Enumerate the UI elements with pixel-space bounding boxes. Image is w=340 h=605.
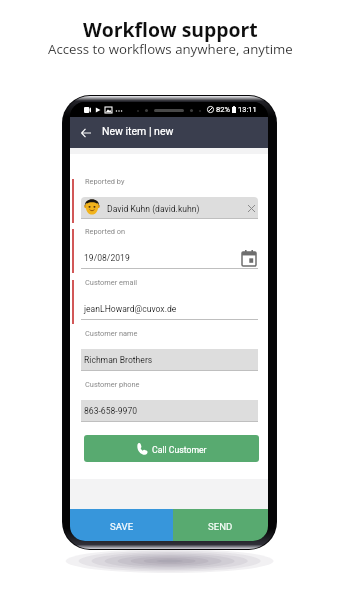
staticText: Workflow support xyxy=(83,16,258,42)
staticText: 13:11 xyxy=(238,105,257,114)
button[interactable]: SEND xyxy=(173,509,268,541)
staticText: Reported by xyxy=(85,177,125,186)
staticText: SEND xyxy=(208,521,233,532)
button[interactable]: Pick date xyxy=(242,250,256,266)
button[interactable]: Richman Brothers xyxy=(81,349,258,371)
button[interactable]: jeanLHoward@cuvox.de xyxy=(81,298,258,320)
staticText: Customer email xyxy=(85,278,138,287)
staticText: David Kuhn (david.kuhn) xyxy=(107,204,200,214)
staticText: Call Customer xyxy=(152,445,207,455)
staticText: 863-658-9970 xyxy=(84,406,138,416)
staticText: Richman Brothers xyxy=(84,355,153,365)
staticText: 19/08/2019 xyxy=(84,253,130,263)
button[interactable]: SAVE xyxy=(70,509,173,541)
staticText: Access to workflows anywhere, anytime xyxy=(48,40,293,58)
staticText: New item | new xyxy=(102,125,174,137)
staticText: SAVE xyxy=(110,521,134,532)
button[interactable]: 19/08/2019 xyxy=(81,247,258,269)
button[interactable]: Call Customer xyxy=(84,435,259,462)
staticText: 82% xyxy=(216,105,230,114)
button[interactable]: 863-658-9970 xyxy=(81,400,258,422)
staticText: Customer phone xyxy=(85,380,140,389)
staticText: jeanLHoward@cuvox.de xyxy=(84,304,177,314)
staticText: Reported on xyxy=(85,227,126,236)
button[interactable]: Clear xyxy=(248,205,255,212)
staticText: Customer name xyxy=(85,329,138,338)
button[interactable]: Back xyxy=(70,117,268,148)
button[interactable]: Back xyxy=(81,128,91,138)
button[interactable]: David Kuhn (david.kuhn) xyxy=(81,197,258,219)
